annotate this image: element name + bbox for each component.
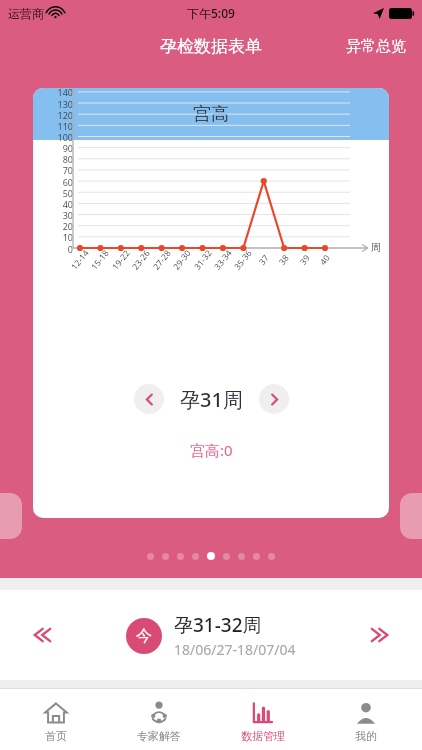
button[interactable]: 宫高 <box>33 88 389 518</box>
staticText: 孕31周 <box>180 386 243 413</box>
button[interactable]: 专家解答 <box>111 693 207 750</box>
staticText: 15-18 <box>84 242 116 278</box>
staticText: 周 <box>371 241 381 254</box>
staticText: 110 <box>41 120 73 132</box>
staticText: 31-32 <box>187 242 219 278</box>
staticText: 孕检数据表单 <box>160 36 262 57</box>
button[interactable]: Next week <box>259 384 289 414</box>
staticText: 10 <box>41 231 73 243</box>
staticText: 39 <box>289 242 321 278</box>
staticText: 今 <box>136 626 152 646</box>
staticText: 19-22 <box>105 242 137 278</box>
button[interactable]: Previous week <box>134 384 164 414</box>
button[interactable]: 数据管理 <box>215 693 311 750</box>
staticText: 异常总览 <box>346 37 406 56</box>
staticText: 下午5:09 <box>187 5 235 21</box>
staticText: 20 <box>41 220 73 232</box>
button[interactable]: Next period <box>360 613 404 657</box>
staticText: 100 <box>41 131 73 143</box>
staticText: 37 <box>248 242 280 278</box>
staticText: 29-30 <box>166 242 198 278</box>
staticText: 35-36 <box>227 242 259 278</box>
staticText: 专家解答 <box>137 729 181 743</box>
staticText: 140 <box>41 88 73 98</box>
staticText: 40 <box>41 198 73 210</box>
staticText: 38 <box>268 242 300 278</box>
staticText: 宫高 <box>193 103 229 126</box>
staticText: 孕31-32周 <box>174 612 262 638</box>
button[interactable]: 异常总览 <box>330 31 422 62</box>
staticText: 首页 <box>45 729 67 743</box>
staticText: 120 <box>41 109 73 121</box>
button[interactable]: 首页 <box>8 693 104 750</box>
staticText: 我的 <box>355 729 377 743</box>
staticText: 数据管理 <box>241 729 285 743</box>
staticText: 80 <box>41 153 73 165</box>
staticText: 23-26 <box>125 242 157 278</box>
staticText: 18/06/27-18/07/04 <box>174 640 296 659</box>
staticText: 60 <box>41 176 73 188</box>
button[interactable]: Previous period <box>18 613 62 657</box>
staticText: 0 <box>41 243 73 255</box>
staticText: 33-34 <box>207 242 239 278</box>
staticText: 运营商 <box>8 6 44 21</box>
button[interactable]: 我的 <box>318 693 414 750</box>
staticText: 90 <box>41 142 73 154</box>
staticText: 50 <box>41 187 73 199</box>
button[interactable]: 孕检数据表单 <box>160 36 262 57</box>
staticText: 70 <box>41 164 73 176</box>
staticText: 宫高:0 <box>190 440 233 460</box>
staticText: 30 <box>41 209 73 221</box>
staticText: 12-14 <box>64 242 96 278</box>
button[interactable]: 今 <box>126 612 296 659</box>
staticText: 130 <box>41 98 73 110</box>
staticText: 27-28 <box>146 242 178 278</box>
staticText: 40 <box>309 242 341 278</box>
